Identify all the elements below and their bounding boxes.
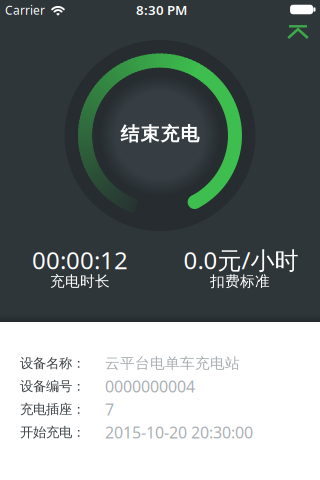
staticText: 开始充电：: [20, 424, 85, 441]
staticText: 结束充电: [120, 122, 199, 145]
staticText: 扣费标准: [210, 272, 270, 290]
staticText: Carrier: [5, 2, 45, 18]
staticText: 2015-10-20 20:30:00: [105, 422, 253, 443]
button[interactable]: Collapse: [283, 20, 313, 45]
staticText: 00:00:12: [32, 244, 128, 276]
staticText: 0000000004: [105, 376, 195, 397]
staticText: 云平台电单车充电站: [105, 354, 240, 372]
staticText: 充电插座：: [20, 401, 85, 418]
staticText: 设备编号：: [20, 378, 85, 395]
staticText: 8:30 PM: [136, 1, 187, 19]
button[interactable]: 结束充电: [99, 74, 221, 196]
staticText: 7: [105, 399, 114, 420]
staticText: 0.0元/小时: [183, 244, 298, 276]
staticText: 设备名称：: [20, 355, 85, 372]
staticText: 充电时长: [50, 272, 110, 290]
